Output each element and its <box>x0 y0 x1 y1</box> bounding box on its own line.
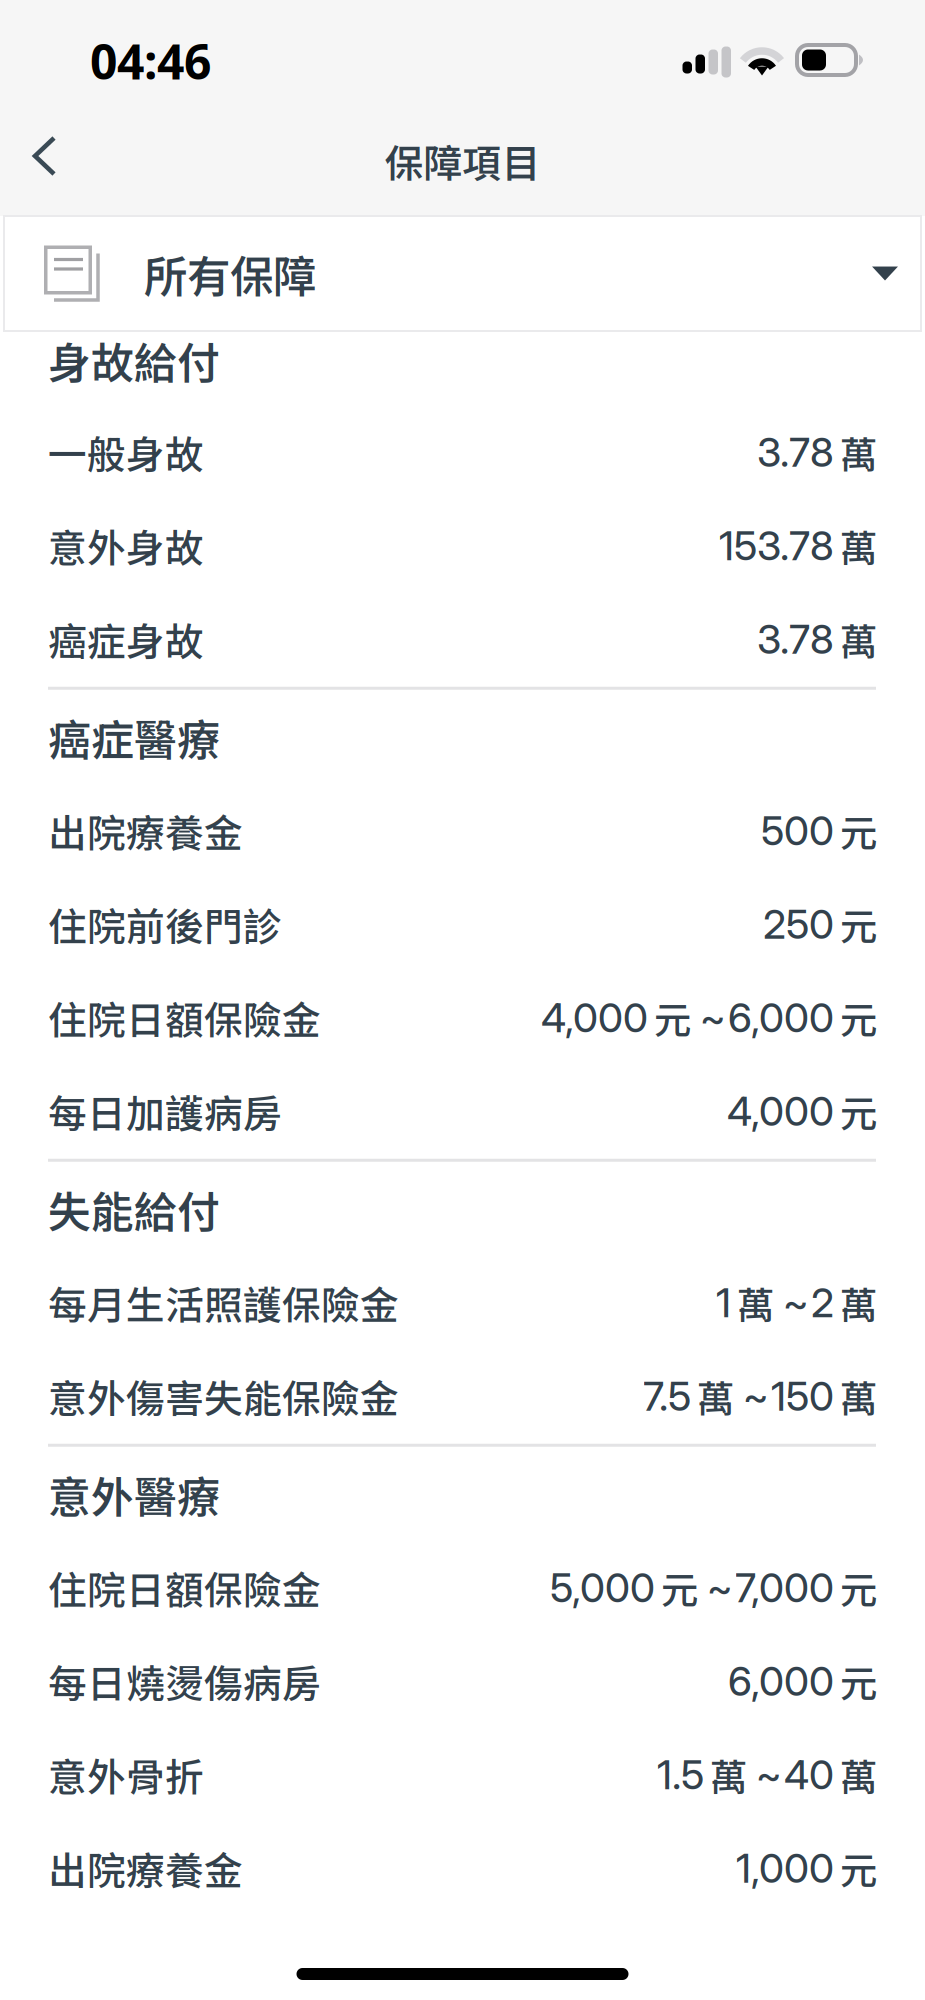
staticText: 萬 <box>840 1276 877 1330</box>
button[interactable]: 意外身故 <box>0 499 925 592</box>
staticText: 所有保障 <box>144 242 316 305</box>
staticText: 500 <box>761 807 834 855</box>
staticText: 住院日額保險金 <box>48 990 321 1046</box>
staticText: 元 <box>840 1561 877 1615</box>
button[interactable]: 住院日額保險金 <box>0 1541 925 1634</box>
button[interactable]: 一般身故 <box>0 405 925 499</box>
staticText: 5,000 <box>550 1564 655 1612</box>
staticText: 6,000 <box>728 1657 834 1705</box>
staticText: 元 <box>840 991 877 1045</box>
staticText: 保障項目 <box>384 133 540 189</box>
staticText: 萬 <box>710 1748 747 1802</box>
staticText: 40 <box>784 1751 834 1799</box>
staticText: ~ <box>700 994 725 1042</box>
button[interactable]: 癌症身故 <box>0 592 925 686</box>
staticText: 04:46 <box>90 29 211 93</box>
staticText: 萬 <box>840 1748 877 1802</box>
button[interactable]: 每日燒燙傷病房 <box>0 1634 925 1728</box>
staticText: 1 <box>716 1279 731 1327</box>
staticText: 元 <box>661 1561 698 1615</box>
staticText: ~ <box>783 1279 808 1327</box>
staticText: 250 <box>763 900 834 948</box>
staticText: 元 <box>654 991 691 1045</box>
button[interactable]: Back <box>0 121 97 205</box>
button[interactable]: 每日加護病房 <box>0 1064 925 1158</box>
staticText: 6,000 <box>728 994 834 1042</box>
staticText: 癌症醫療 <box>48 706 220 768</box>
staticText: 萬 <box>737 1276 774 1330</box>
staticText: 元 <box>840 1654 877 1708</box>
staticText: 身故給付 <box>48 329 220 391</box>
staticText: 3.78 <box>757 615 834 663</box>
staticText: 每日燒燙傷病房 <box>48 1653 321 1709</box>
staticText: 萬 <box>840 425 877 479</box>
staticText: 住院前後門診 <box>48 896 282 952</box>
button[interactable]: 意外傷害失能保險金 <box>0 1349 925 1443</box>
staticText: 每日加護病房 <box>48 1083 282 1139</box>
staticText: 每月生活照護保險金 <box>48 1275 399 1331</box>
staticText: ~ <box>743 1372 768 1420</box>
staticText: 元 <box>840 1841 877 1895</box>
button[interactable]: 每月生活照護保險金 <box>0 1256 925 1349</box>
staticText: 153.78 <box>719 522 834 570</box>
staticText: 住院日額保險金 <box>48 1560 321 1616</box>
staticText: 萬 <box>840 519 877 573</box>
staticText: 出院療養金 <box>48 803 243 859</box>
staticText: 癌症身故 <box>48 611 204 667</box>
staticText: ~ <box>756 1751 781 1799</box>
button[interactable]: 所有保障 <box>4 216 921 331</box>
button[interactable]: 意外骨折 <box>0 1728 925 1821</box>
button[interactable]: 住院前後門診 <box>0 877 925 971</box>
staticText: 失能給付 <box>48 1178 220 1240</box>
staticText: 150 <box>771 1372 834 1420</box>
staticText: 意外醫療 <box>48 1463 220 1525</box>
staticText: 1.5 <box>657 1751 704 1799</box>
staticText: 7,000 <box>735 1564 834 1612</box>
staticText: 1,000 <box>736 1844 834 1892</box>
staticText: ~ <box>707 1564 732 1612</box>
staticText: 3.78 <box>757 428 834 476</box>
staticText: 意外傷害失能保險金 <box>48 1368 399 1424</box>
staticText: 元 <box>840 804 877 858</box>
staticText: 元 <box>840 1084 877 1138</box>
staticText: 萬 <box>840 612 877 666</box>
staticText: 元 <box>840 897 877 951</box>
staticText: 出院療養金 <box>48 1840 243 1896</box>
staticText: 2 <box>811 1279 834 1327</box>
button[interactable]: 住院日額保險金 <box>0 971 925 1064</box>
staticText: 4,000 <box>727 1087 834 1135</box>
staticText: 萬 <box>840 1369 877 1423</box>
staticText: 7.5 <box>643 1372 691 1420</box>
staticText: 意外身故 <box>48 518 204 574</box>
staticText: 一般身故 <box>48 424 204 480</box>
staticText: 4,000 <box>541 994 648 1042</box>
staticText: 意外骨折 <box>48 1747 204 1803</box>
staticText: 萬 <box>697 1369 734 1423</box>
button[interactable]: 出院療養金 <box>0 1821 925 1915</box>
button[interactable]: 出院療養金 <box>0 784 925 877</box>
